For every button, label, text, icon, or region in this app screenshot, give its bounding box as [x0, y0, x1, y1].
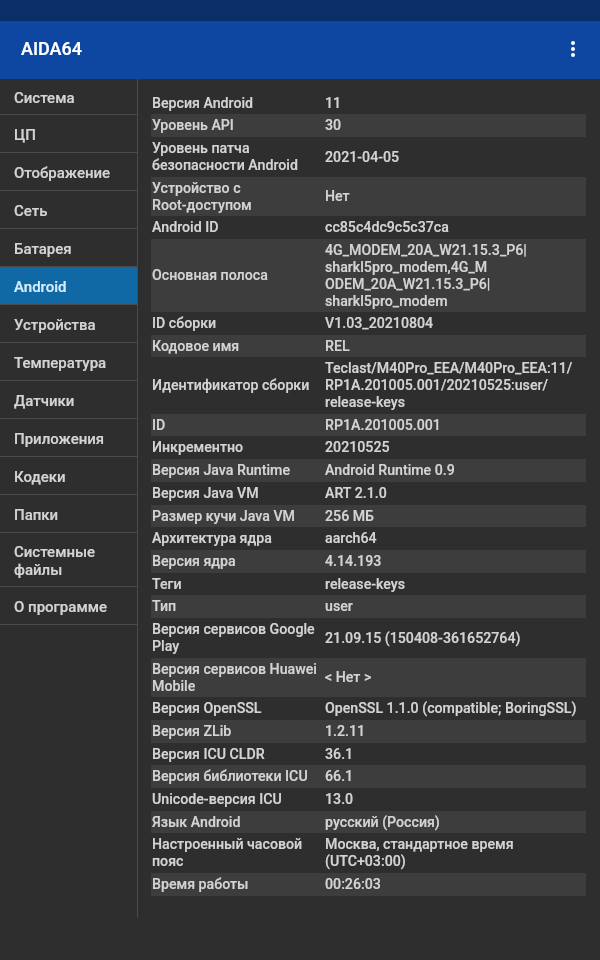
- staticText: Версия Android: [152, 95, 325, 112]
- button[interactable]: Инкрементно: [151, 436, 586, 459]
- staticText: Кодеки: [14, 467, 66, 485]
- staticText: Папки: [14, 505, 59, 523]
- button[interactable]: Основная полоса: [151, 239, 586, 312]
- button[interactable]: Версия Android: [151, 92, 586, 114]
- staticText: Версия сервисов Huawei Mobile: [152, 661, 325, 695]
- button[interactable]: ЦП: [0, 115, 137, 152]
- staticText: 20210525: [325, 439, 586, 456]
- staticText: Версия библиотеки ICU: [152, 768, 325, 785]
- button[interactable]: Сеть: [0, 191, 137, 228]
- staticText: 4.14.193: [325, 553, 586, 570]
- staticText: Время работы: [152, 876, 325, 893]
- button[interactable]: Системные файлы: [0, 533, 137, 586]
- button[interactable]: Версия сервисов Google Play: [151, 618, 586, 658]
- staticText: Версия OpenSSL: [152, 700, 325, 717]
- button[interactable]: Тип: [151, 595, 586, 618]
- staticText: Версия ICU CLDR: [152, 746, 325, 763]
- button[interactable]: Устройства: [0, 305, 137, 342]
- staticText: Основная полоса: [152, 267, 325, 284]
- staticText: AIDA64: [21, 38, 82, 59]
- staticText: REL: [325, 338, 586, 355]
- button[interactable]: Папки: [0, 495, 137, 532]
- staticText: 00:26:03: [325, 876, 586, 893]
- staticText: Москва, стандартное время (UTC+03:00): [325, 836, 586, 870]
- staticText: ID: [152, 417, 325, 434]
- staticText: Устройство с Root-доступом: [152, 180, 325, 214]
- button[interactable]: Уровень патча безопасности Android: [151, 137, 586, 177]
- staticText: ART 2.1.0: [325, 485, 586, 502]
- button[interactable]: Время работы: [151, 873, 586, 896]
- button[interactable]: Настроенный часовой пояс: [151, 833, 586, 873]
- staticText: 66.1: [325, 768, 586, 785]
- staticText: Уровень патча безопасности Android: [152, 140, 325, 174]
- button[interactable]: Android: [0, 267, 137, 304]
- button[interactable]: Версия Java Runtime: [151, 459, 586, 482]
- button[interactable]: Теги: [151, 573, 586, 595]
- button[interactable]: Система: [0, 79, 137, 114]
- button[interactable]: Размер кучи Java VM: [151, 505, 586, 527]
- staticText: Настроенный часовой пояс: [152, 836, 325, 870]
- button[interactable]: ID: [151, 414, 586, 436]
- button[interactable]: Язык Android: [151, 811, 586, 833]
- button[interactable]: Версия ядра: [151, 550, 586, 573]
- staticText: Android: [14, 277, 67, 295]
- button[interactable]: О программе: [0, 587, 137, 624]
- staticText: Инкрементно: [152, 439, 325, 456]
- staticText: cc85c4dc9c5c37ca: [325, 219, 586, 236]
- staticText: Сеть: [14, 201, 48, 219]
- button[interactable]: Версия библиотеки ICU: [151, 765, 586, 788]
- button[interactable]: Версия Java VM: [151, 482, 586, 505]
- button[interactable]: Версия OpenSSL: [151, 697, 586, 720]
- button[interactable]: Идентификатор сборки: [151, 357, 586, 414]
- staticText: Батарея: [14, 239, 72, 257]
- staticText: 1.2.11: [325, 723, 586, 740]
- staticText: 4G_MODEM_20A_W21.15.3_P6| sharkl5pro_mod…: [325, 242, 586, 310]
- staticText: Теги: [152, 576, 325, 593]
- staticText: 256 МБ: [325, 508, 586, 525]
- button[interactable]: Версия ICU CLDR: [151, 743, 586, 765]
- staticText: О программе: [14, 597, 107, 615]
- staticText: 36.1: [325, 746, 586, 763]
- staticText: Уровень API: [152, 117, 325, 134]
- button[interactable]: Уровень API: [151, 114, 586, 137]
- staticText: ЦП: [14, 125, 36, 143]
- staticText: 21.09.15 (150408-361652764): [325, 630, 586, 647]
- button[interactable]: Кодовое имя: [151, 335, 586, 357]
- button[interactable]: Версия ZLib: [151, 720, 586, 743]
- button[interactable]: Android ID: [151, 216, 586, 239]
- button[interactable]: Кодеки: [0, 457, 137, 494]
- staticText: Unicode-версия ICU: [152, 791, 325, 808]
- staticText: Нет: [325, 188, 586, 205]
- staticText: Версия Java Runtime: [152, 462, 325, 479]
- staticText: Системные файлы: [14, 542, 131, 578]
- button[interactable]: Датчики: [0, 381, 137, 418]
- staticText: Версия сервисов Google Play: [152, 621, 325, 655]
- staticText: Кодовое имя: [152, 338, 325, 355]
- staticText: < Нет >: [325, 669, 586, 686]
- staticText: Архитектура ядра: [152, 530, 325, 547]
- button[interactable]: Версия сервисов Huawei Mobile: [151, 658, 586, 697]
- button[interactable]: Отображение: [0, 153, 137, 190]
- staticText: Версия Java VM: [152, 485, 325, 502]
- staticText: release-keys: [325, 576, 586, 593]
- button[interactable]: Температура: [0, 343, 137, 380]
- staticText: Температура: [14, 353, 107, 371]
- staticText: RP1A.201005.001: [325, 417, 586, 434]
- button[interactable]: Unicode-версия ICU: [151, 788, 586, 811]
- staticText: OpenSSL 1.1.0 (compatible; BoringSSL): [325, 700, 586, 717]
- staticText: русский (Россия): [325, 814, 586, 831]
- staticText: Язык Android: [152, 814, 325, 831]
- button[interactable]: Батарея: [0, 229, 137, 266]
- button[interactable]: Приложения: [0, 419, 137, 456]
- staticText: Приложения: [14, 429, 105, 447]
- button[interactable]: More options: [549, 25, 597, 73]
- staticText: Android Runtime 0.9: [325, 462, 586, 479]
- button[interactable]: Устройство с Root-доступом: [151, 177, 586, 216]
- staticText: aarch64: [325, 530, 586, 547]
- staticText: Система: [14, 88, 75, 106]
- staticText: Android ID: [152, 219, 325, 236]
- staticText: Датчики: [14, 391, 75, 409]
- button[interactable]: ID сборки: [151, 312, 586, 335]
- staticText: Отображение: [14, 163, 111, 181]
- button[interactable]: Архитектура ядра: [151, 527, 586, 550]
